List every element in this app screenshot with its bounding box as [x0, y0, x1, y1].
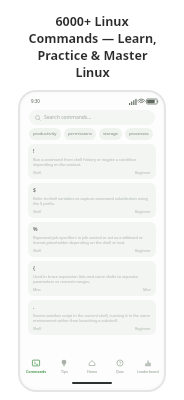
staticText: Tips [61, 369, 68, 374]
button[interactable]: Home [78, 357, 106, 376]
button[interactable]: . [28, 300, 156, 335]
staticText: 9:30 [31, 98, 40, 104]
staticText: Shell [33, 209, 42, 214]
staticText: ! [33, 148, 35, 155]
staticText: Misc [143, 287, 151, 292]
staticText: Source another script in the current she… [33, 313, 150, 318]
staticText: productivity [33, 131, 57, 137]
staticText: Commands [26, 369, 47, 374]
staticText: Beginner [135, 170, 151, 175]
button[interactable]: $ [28, 183, 156, 218]
staticText: Beginner [135, 248, 151, 253]
staticText: Quiz [116, 369, 124, 374]
staticText: Shell [33, 326, 42, 331]
staticText: { [33, 265, 35, 272]
staticText: Linux [75, 64, 110, 81]
staticText: Beginner [135, 209, 151, 214]
staticText: Search commands... [44, 114, 92, 121]
staticText: Misc [33, 287, 41, 292]
button[interactable]: processes [125, 128, 153, 140]
staticText: parameters or numeric ranges. [33, 279, 90, 284]
staticText: Shell [33, 248, 42, 253]
button[interactable]: storage [99, 128, 122, 140]
staticText: . [33, 304, 35, 311]
staticText: processes [129, 131, 149, 137]
staticText: Commands — Learn, [28, 30, 157, 47]
staticText: the $ prefix. [33, 201, 55, 206]
button[interactable]: permissions [64, 128, 96, 140]
staticText: Run a command from shell history or nega… [33, 157, 137, 162]
staticText: format placeholder depending on the shel… [33, 240, 126, 245]
button[interactable]: productivity [29, 128, 61, 140]
button[interactable]: Quiz [106, 357, 134, 376]
staticText: Used in brace expansion lists and some s… [33, 274, 138, 279]
staticText: storage [103, 131, 118, 137]
button[interactable]: Leaderboard [134, 357, 162, 376]
staticText: Home [87, 369, 98, 374]
staticText: Shell [33, 170, 42, 175]
staticText: Represent job specifiers in job control … [33, 235, 143, 240]
staticText: permissions [68, 131, 92, 137]
button[interactable]: Search commands... [29, 110, 155, 125]
button[interactable]: Tips [50, 357, 78, 376]
staticText: 6000+ Linux [55, 13, 129, 30]
staticText: Refer to shell variables or capture comm… [33, 196, 148, 201]
button[interactable]: % [28, 222, 156, 257]
staticText: Practice & Master [37, 47, 148, 64]
staticText: $ [33, 187, 36, 194]
staticText: environment rather than launching a subs… [33, 318, 118, 323]
button[interactable]: Commands [22, 357, 50, 376]
staticText: % [33, 226, 38, 233]
button[interactable]: { [28, 261, 156, 296]
staticText: depending on the context. [33, 162, 82, 167]
staticText: Beginner [135, 326, 151, 331]
button[interactable]: ! [28, 144, 156, 179]
staticText: Leaderboard [137, 369, 159, 374]
